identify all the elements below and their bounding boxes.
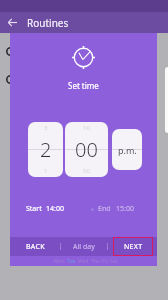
staticText: BACK (26, 242, 45, 252)
staticText: NEXT (124, 242, 143, 252)
button[interactable]: NEXT (113, 237, 153, 256)
staticText: Mon (54, 258, 65, 265)
button[interactable]: 10 (65, 122, 108, 177)
staticText: p.m. (118, 144, 137, 156)
staticText: Start (26, 204, 42, 214)
staticText: 14:00 (46, 204, 64, 214)
button[interactable]: 3 (28, 122, 63, 177)
staticText: 10 (83, 124, 90, 132)
staticText: End (98, 204, 111, 214)
staticText: 50 (83, 167, 90, 175)
staticText: Routines (27, 16, 69, 30)
staticText: 1 (44, 167, 48, 175)
staticText: 15:00 (116, 204, 134, 214)
staticText: Fri (102, 258, 108, 265)
staticText: 2 (40, 136, 52, 163)
staticText: 3 (44, 124, 48, 132)
button[interactable]: p.m. (112, 129, 142, 170)
staticText: Thu (91, 258, 100, 265)
button[interactable]: Back (4, 14, 21, 31)
staticText: All day (73, 242, 95, 252)
button[interactable]: BACK (10, 237, 60, 256)
staticText: Set time (68, 80, 99, 91)
staticText: Sat (110, 258, 118, 265)
button[interactable]: All day (61, 237, 107, 256)
staticText: 00 (75, 136, 98, 163)
staticText: Wed (78, 258, 89, 265)
staticText: Tue (67, 258, 76, 265)
